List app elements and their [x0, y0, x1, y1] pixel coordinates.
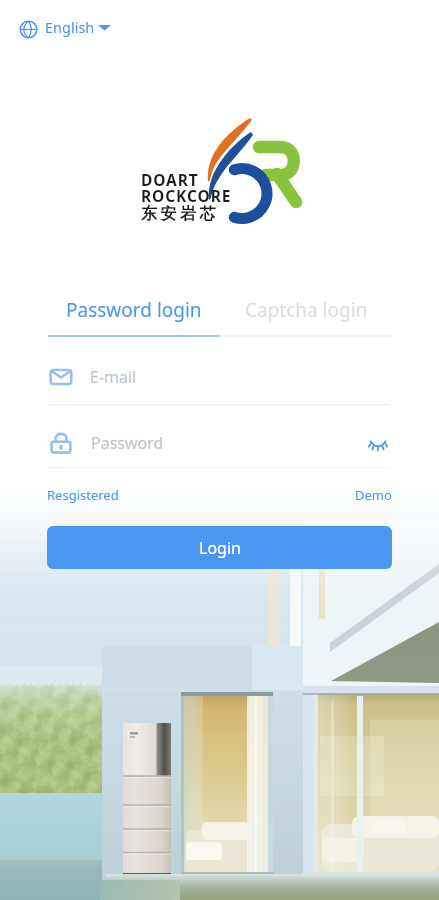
staticText: ROCKCORE: [141, 185, 232, 206]
staticText: English: [45, 17, 95, 37]
button[interactable]: Show password: [364, 429, 392, 457]
staticText: DOART: [141, 169, 199, 190]
staticText: E-mail: [90, 366, 137, 388]
button[interactable]: Demo: [355, 486, 392, 504]
button[interactable]: Password login: [48, 297, 220, 337]
button[interactable]: Resgistered: [47, 486, 119, 504]
staticText: Password login: [66, 297, 202, 323]
staticText: Login: [199, 537, 241, 559]
staticText: Captcha login: [245, 297, 368, 323]
staticText: Password: [91, 432, 364, 454]
button[interactable]: Captcha login: [220, 297, 392, 337]
button[interactable]: English: [15, 13, 115, 41]
button[interactable]: Login: [47, 526, 392, 569]
staticText: 东安岩芯: [141, 204, 220, 224]
